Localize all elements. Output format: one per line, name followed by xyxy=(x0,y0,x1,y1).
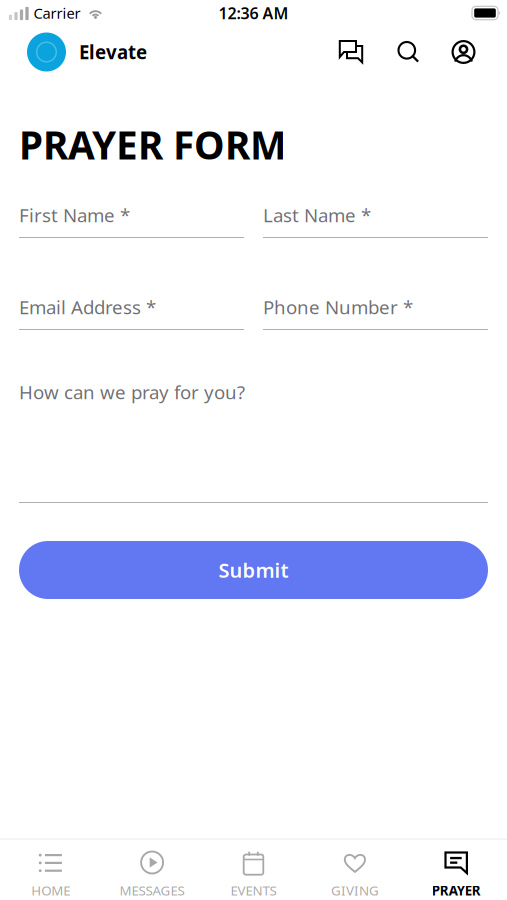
button[interactable]: HOME xyxy=(0,839,101,900)
staticText: GIVING xyxy=(331,881,379,899)
button[interactable]: Phone Number * xyxy=(263,297,488,330)
button[interactable]: EVENTS xyxy=(203,839,304,900)
staticText: Last Name * xyxy=(263,203,371,227)
button[interactable]: Messages xyxy=(326,30,376,74)
staticText: 12:36 AM xyxy=(218,2,288,24)
button[interactable]: MESSAGES xyxy=(101,839,203,900)
staticText: MESSAGES xyxy=(120,881,185,899)
staticText: PRAYER xyxy=(432,881,481,899)
button[interactable]: Email Address * xyxy=(19,297,244,330)
button[interactable]: Account xyxy=(441,30,486,74)
button[interactable]: First Name * xyxy=(19,205,244,238)
button[interactable]: PRAYER xyxy=(406,839,507,900)
staticText: How can we pray for you? xyxy=(19,380,245,404)
button[interactable]: Submit xyxy=(19,541,488,599)
staticText: Elevate xyxy=(79,40,147,64)
staticText: PRAYER FORM xyxy=(19,119,286,170)
button[interactable]: Search xyxy=(376,30,441,74)
staticText: Carrier xyxy=(33,3,80,23)
button[interactable]: How can we pray for you? xyxy=(19,382,488,503)
staticText: Email Address * xyxy=(19,295,156,319)
staticText: First Name * xyxy=(19,203,130,227)
button[interactable]: GIVING xyxy=(304,839,406,900)
button[interactable]: Last Name * xyxy=(263,205,488,238)
staticText: Phone Number * xyxy=(263,295,413,319)
staticText: EVENTS xyxy=(230,881,276,899)
staticText: Submit xyxy=(218,557,288,583)
staticText: HOME xyxy=(31,881,70,899)
